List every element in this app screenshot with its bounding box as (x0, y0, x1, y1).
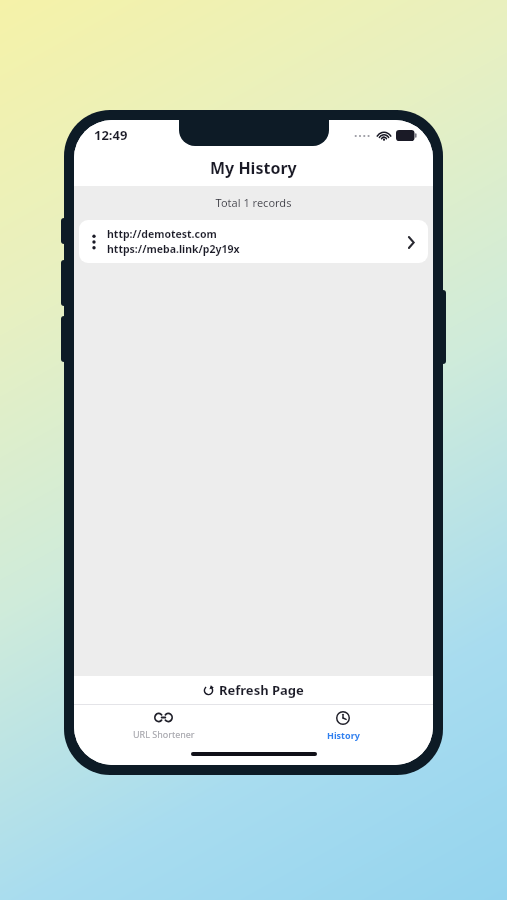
staticText: Total 1 records (74, 195, 433, 210)
staticText: 12:49 (94, 126, 128, 144)
staticText: http://demotest.com (107, 227, 217, 241)
staticText: Refresh Page (219, 681, 304, 699)
staticText: My History (210, 157, 297, 179)
button[interactable]: More options (79, 220, 428, 263)
staticText: History (327, 729, 360, 741)
button[interactable]: Refresh Page (74, 676, 433, 704)
staticText: URL Shortener (133, 728, 195, 740)
button[interactable]: URL Shortener (74, 705, 253, 747)
button[interactable]: Open details (402, 233, 420, 251)
button[interactable]: History (253, 705, 433, 747)
staticText: https://meba.link/p2y19x (107, 242, 240, 256)
button[interactable]: More options (87, 231, 101, 253)
